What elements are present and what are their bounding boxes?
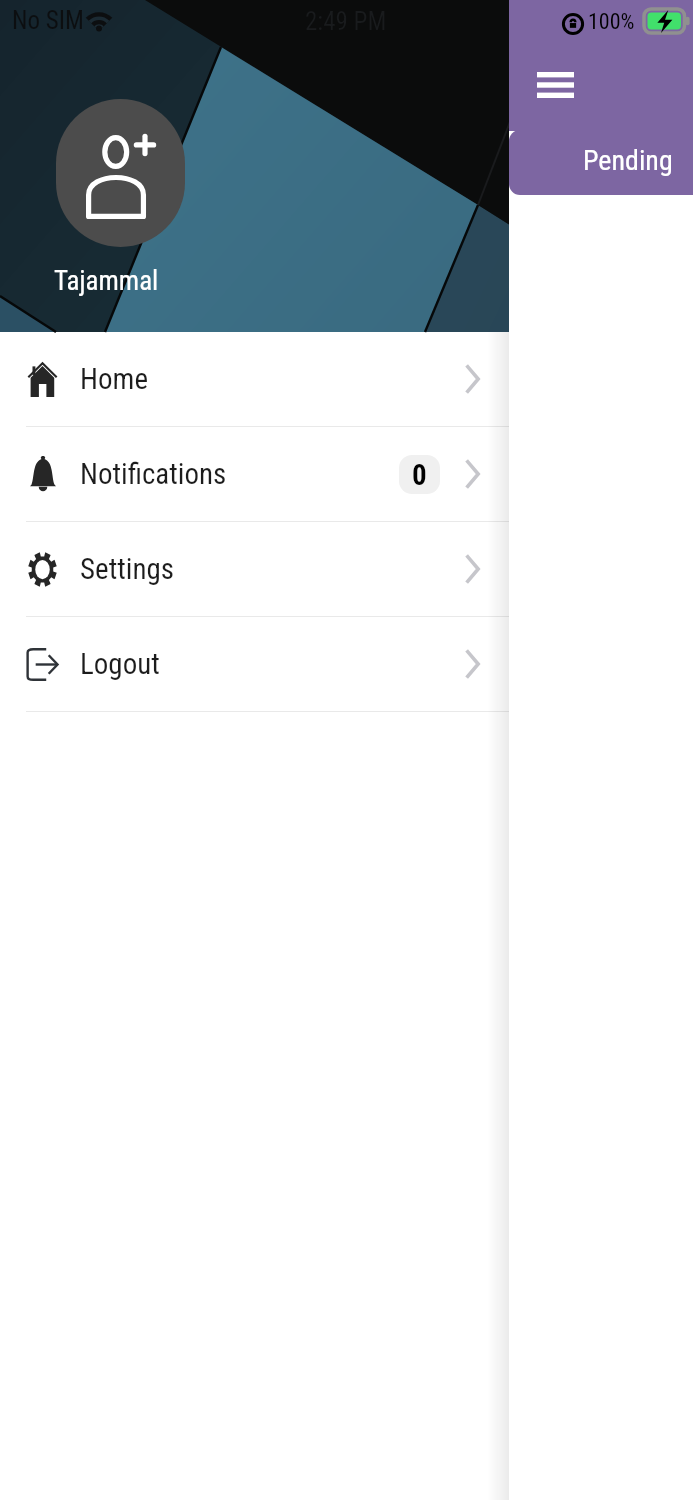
staticText: Logout (80, 647, 160, 681)
staticText: 2:49 PM (305, 7, 387, 36)
staticText: No SIM (12, 6, 84, 35)
staticText: 0 (412, 458, 427, 492)
button[interactable]: Home (0, 332, 509, 426)
staticText: Home (80, 362, 148, 396)
button[interactable]: Notifications (0, 427, 509, 521)
staticText: Notifications (80, 457, 227, 491)
button[interactable]: Open navigation drawer (528, 63, 583, 107)
staticText: Tajammal (54, 265, 159, 297)
button[interactable]: Logout (0, 617, 509, 711)
staticText: Settings (80, 552, 175, 586)
button[interactable]: Settings (0, 522, 509, 616)
staticText: Pending (583, 144, 673, 177)
staticText: 100% (588, 9, 635, 35)
